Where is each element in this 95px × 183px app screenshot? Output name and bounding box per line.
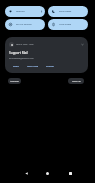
button[interactable]: Internet <box>5 6 45 17</box>
staticText: Internet <box>16 10 25 13</box>
button[interactable]: Clear all <box>68 78 84 84</box>
button[interactable]: Auto-rotate <box>48 19 88 30</box>
staticText: Snooze <box>46 65 54 68</box>
staticText: Do Not Disturb <box>16 23 32 26</box>
staticText: Support Mail <box>9 51 28 55</box>
staticText: Text & Copy · now <box>16 43 34 46</box>
staticText: Mark read <box>27 65 39 68</box>
button[interactable]: Snooze <box>45 64 55 69</box>
button[interactable]: Manage <box>8 78 21 84</box>
staticText: Manage <box>10 80 19 83</box>
button[interactable]: Home <box>37 164 57 183</box>
staticText: Auto-rotate <box>59 23 72 26</box>
button[interactable]: Text & Copy · now <box>5 37 88 73</box>
button[interactable]: Back <box>16 164 36 183</box>
button[interactable]: Mark read <box>26 64 40 69</box>
staticText: kvocdbvqjg@wtsctrt.com <box>9 57 34 60</box>
button[interactable]: Dark theme <box>48 6 88 17</box>
button[interactable]: Do Not Disturb <box>5 19 45 30</box>
staticText: Dark theme <box>59 10 72 13</box>
button[interactable]: Reply <box>12 64 21 69</box>
staticText: Reply <box>13 65 20 68</box>
button[interactable]: Recents <box>60 164 80 183</box>
staticText: Clear all <box>72 80 81 83</box>
